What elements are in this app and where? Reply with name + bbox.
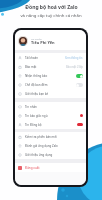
button[interactable]: Chế độ ban đêm [15, 80, 86, 89]
button[interactable]: Tin Đồng bộ [15, 120, 86, 129]
button[interactable]: Đánh giá ứng dụng Zalo [15, 141, 86, 150]
button[interactable]: Tin nhắn [15, 102, 86, 111]
button[interactable]: Nhận thông báo [15, 71, 86, 80]
staticText: Bảo mật 2 lớp [66, 65, 83, 69]
staticText: Tin nhắn [25, 105, 37, 109]
staticText: Đánh giá ứng dụng Zalo [25, 144, 58, 148]
button[interactable]: Switch off [76, 83, 83, 87]
button[interactable]: Đăng xuất [15, 163, 86, 172]
staticText: Xem thông tin [65, 56, 83, 60]
staticText: Tin Đồng bộ [25, 123, 42, 127]
button[interactable]: Switch on [76, 74, 83, 78]
button[interactable]: Giới thiệu bạn bè [15, 89, 86, 98]
staticText: Giới thiệu ứng dụng [25, 153, 53, 157]
staticText: Nhận thông báo [25, 74, 48, 78]
staticText: Đăng xuất [25, 166, 40, 170]
staticText: Tiêu Phi Yến [31, 40, 55, 45]
button[interactable]: Giới thiệu ứng dụng [15, 150, 86, 159]
button[interactable]: Tài khoản [15, 53, 86, 62]
staticText: Bảo mật [25, 65, 37, 69]
staticText: Kiểm tra phiên bản mới [25, 135, 57, 139]
staticText: Giới thiệu bạn bè [25, 92, 49, 96]
staticText: Tài khoản [31, 37, 42, 40]
staticText: Tin báo giấc ngủ [25, 114, 48, 118]
button[interactable]: Kiểm tra phiên bản mới [15, 132, 86, 141]
button[interactable]: Bảo mật [15, 62, 86, 71]
button[interactable]: Tài khoản [15, 30, 86, 50]
staticText: và nâng cấp tuỳ chỉnh cá nhân [20, 12, 82, 18]
staticText: Tài khoản [25, 56, 39, 60]
staticText: Đồng bộ hoá với Zalo [25, 4, 78, 11]
button[interactable]: Tin báo giấc ngủ [15, 111, 86, 120]
staticText: Chế độ ban đêm [25, 83, 48, 87]
